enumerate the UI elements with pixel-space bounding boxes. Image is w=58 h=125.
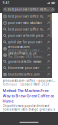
button[interactable]: Method: The Machine-Free Way to Brew Gre… — [2, 88, 55, 104]
staticText: Method: The Machine-Free Way to Brew Gre… — [2, 88, 53, 104]
staticText: bluebottlecoffee.com — [8, 73, 39, 76]
button[interactable]: gooseneck kettle reviews — [2, 58, 52, 65]
button[interactable]: Address and search field — [0, 6, 58, 13]
staticText: grind size for pour over — [8, 40, 42, 44]
staticText: Method: Use the 1:16 Brew Ratio for Filt… — [2, 119, 54, 125]
staticText: best pour over coffee method — [8, 8, 49, 11]
button[interactable]: seriouseats.com — [2, 46, 52, 52]
staticText: best pour over coffee maker — [8, 28, 44, 31]
button[interactable]: pour over ratio calculator — [2, 20, 52, 26]
button[interactable]: jameshoffmann.co.uk — [2, 52, 52, 58]
staticText: best pour over coffee method — [8, 15, 44, 18]
staticText: 9:41 — [3, 1, 10, 5]
staticText: Technique · Updated March 2024 — [2, 83, 49, 86]
staticText: gooseneck kettle reviews — [8, 60, 41, 63]
button[interactable]: bloom time pour over — [2, 65, 52, 71]
staticText: bloom time pour over — [8, 66, 39, 70]
staticText: pour over vs french press — [8, 34, 43, 38]
staticText: seriouseats.com — [8, 45, 29, 49]
button[interactable]: bluebottlecoffee.com — [2, 71, 52, 78]
staticText: Chipotle's most popular drink and how a … — [2, 104, 54, 115]
button[interactable]: pour over vs french press — [2, 33, 52, 39]
button[interactable]: grind size for pour over — [2, 39, 52, 45]
staticText: The Ultimate V60 Technique — [8, 55, 44, 59]
button[interactable]: best pour over coffee maker — [2, 26, 52, 32]
staticText: jameshoffmann.co.uk — [8, 52, 36, 55]
button[interactable]: best pour over coffee method — [2, 13, 52, 20]
staticText: pour over ratio calculator — [8, 21, 42, 25]
button[interactable]: Method: Use the 1:16 Brew Ratio for Filt… — [2, 119, 55, 125]
staticText: seriouseats.com › coffee › pour-over-met… — [2, 79, 55, 83]
staticText: Best Pour-Over Coffee Makers — [8, 49, 44, 52]
